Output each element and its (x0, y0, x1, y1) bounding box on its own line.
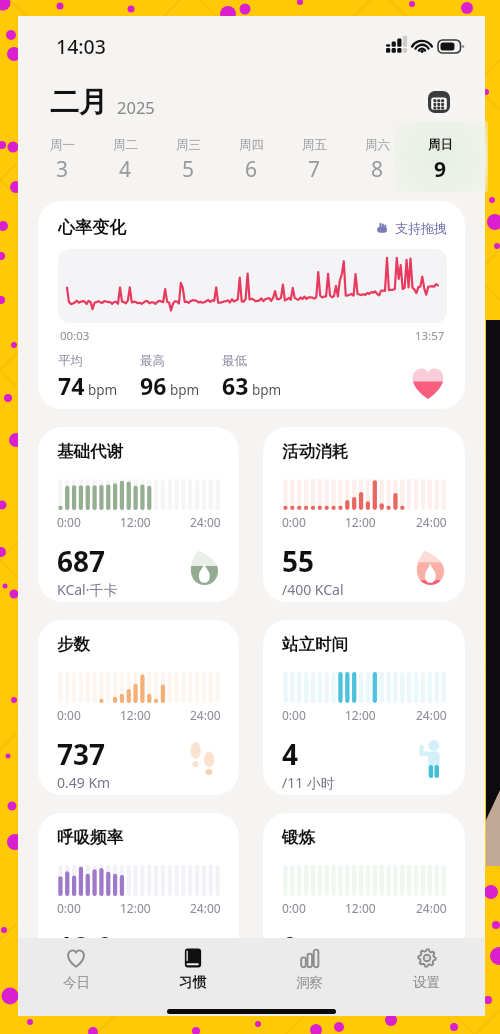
staticText: 4 (282, 735, 299, 773)
button[interactable]: 步数 (38, 620, 239, 795)
staticText: 周二 (113, 137, 138, 153)
staticText: 7 (308, 155, 321, 184)
staticText: 0:00 (57, 900, 81, 916)
staticText: 55 (282, 542, 315, 580)
staticText: 周六 (365, 137, 390, 153)
button[interactable]: 洞察 (251, 938, 368, 1000)
button[interactable]: Calendar (424, 87, 454, 117)
staticText: 洞察 (296, 974, 323, 991)
staticText: 周日 (428, 137, 453, 153)
staticText: 6 (245, 155, 258, 184)
staticText: 63 (222, 370, 249, 401)
staticText: 周三 (176, 137, 201, 153)
staticText: 5 (182, 155, 195, 184)
staticText: 锻炼 (282, 827, 315, 848)
staticText: 24:00 (190, 900, 221, 916)
staticText: 设置 (413, 974, 440, 991)
staticText: 74 (58, 370, 85, 401)
staticText: 24:00 (416, 514, 447, 530)
staticText: 24:00 (190, 514, 221, 530)
button[interactable]: 周二 (94, 128, 157, 192)
staticText: 0:00 (282, 900, 306, 916)
staticText: 12:00 (345, 707, 376, 723)
button[interactable]: 活动消耗 (263, 427, 465, 602)
button[interactable]: 站立时间 (263, 620, 465, 795)
staticText: 最高 (140, 353, 165, 369)
staticText: 4 (119, 155, 132, 184)
staticText: 12:00 (120, 707, 151, 723)
staticText: 0:00 (282, 707, 306, 723)
staticText: 周四 (239, 137, 264, 153)
staticText: 12.0 (57, 928, 113, 966)
staticText: 支持拖拽 (395, 220, 447, 236)
staticText: 12:00 (345, 900, 376, 916)
button[interactable]: 锻炼 (263, 813, 465, 988)
staticText: 周一 (50, 137, 75, 153)
button[interactable]: 基础代谢 (38, 427, 239, 602)
staticText: 14:03 (56, 33, 106, 60)
staticText: 24:00 (416, 900, 447, 916)
staticText: 周五 (302, 137, 327, 153)
staticText: 24:00 (416, 707, 447, 723)
staticText: 站立时间 (282, 634, 348, 655)
staticText: 基础代谢 (57, 441, 123, 462)
staticText: 平均 (58, 353, 83, 369)
staticText: 0 (282, 928, 299, 966)
button[interactable]: 心率变化 (38, 201, 465, 409)
staticText: KCal·千卡 (57, 580, 118, 599)
button[interactable]: 呼吸频率 (38, 813, 239, 988)
button[interactable]: 设置 (368, 938, 485, 1000)
staticText: 步数 (57, 634, 90, 655)
staticText: 12:00 (120, 900, 151, 916)
staticText: 习惯 (179, 974, 206, 991)
staticText: 二月 (50, 84, 108, 121)
button[interactable]: 周四 (220, 128, 283, 192)
staticText: 12:00 (345, 514, 376, 530)
staticText: 9 (434, 155, 447, 184)
button[interactable]: 周五 (283, 128, 346, 192)
button[interactable]: 习惯 (134, 938, 251, 1000)
staticText: 24:00 (190, 707, 221, 723)
staticText: 3 (56, 155, 69, 184)
staticText: 0:00 (282, 514, 306, 530)
staticText: 最低 (222, 353, 247, 369)
staticText: 0:00 (57, 707, 81, 723)
staticText: 0:00 (57, 514, 81, 530)
staticText: 活动消耗 (282, 441, 348, 462)
staticText: /11 小时 (282, 773, 335, 792)
staticText: 96 (140, 370, 167, 401)
staticText: 12:00 (120, 514, 151, 530)
staticText: /400 KCal (282, 580, 344, 599)
staticText: bpm (88, 381, 118, 399)
button[interactable]: 周一 (31, 128, 94, 192)
staticText: 0.49 Km (57, 773, 111, 792)
staticText: 今日 (63, 974, 90, 991)
button[interactable]: 周日 (409, 128, 472, 192)
staticText: 13:57 (415, 328, 445, 344)
staticText: bpm (170, 381, 200, 399)
staticText: 8 (371, 155, 384, 184)
button[interactable]: 今日 (18, 938, 134, 1000)
staticText: 2025 (117, 96, 155, 118)
staticText: 心率变化 (58, 217, 126, 238)
button[interactable]: 周三 (157, 128, 220, 192)
staticText: 737 (57, 735, 106, 773)
staticText: 00:03 (60, 328, 90, 344)
staticText: 687 (57, 542, 106, 580)
button[interactable]: 周六 (346, 128, 409, 192)
staticText: 呼吸频率 (57, 827, 123, 848)
staticText: bpm (252, 381, 282, 399)
